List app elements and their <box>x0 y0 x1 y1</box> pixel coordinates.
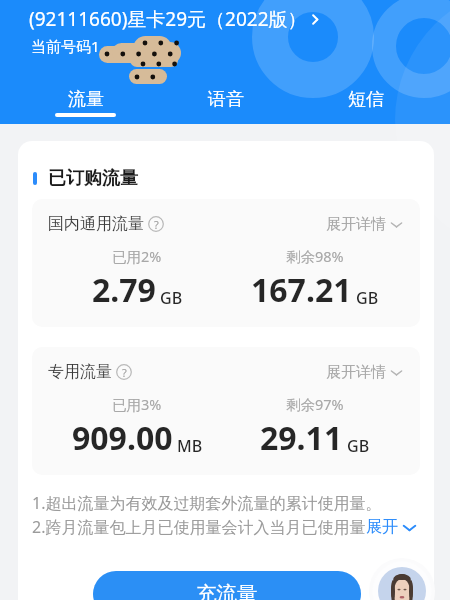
staticText: 国内通用流量 <box>48 214 144 234</box>
staticText: 当前号码1 8 <box>31 36 152 56</box>
button[interactable]: 展开详情 <box>326 363 404 382</box>
staticText: 909.00 <box>72 416 173 460</box>
button[interactable]: 说明 <box>116 364 132 380</box>
staticText: 已订购流量 <box>48 167 138 190</box>
staticText: 1.超出流量为有效及过期套外流量的累计使用量。 <box>32 492 382 514</box>
staticText: 剩余97% <box>286 394 344 414</box>
staticText: ? <box>154 217 159 232</box>
staticText: MB <box>177 435 203 457</box>
staticText: GB <box>347 435 370 457</box>
staticText: 展开详情 <box>326 215 386 234</box>
staticText: 展开 <box>366 517 398 537</box>
staticText: 剩余98% <box>286 246 344 266</box>
staticText: 语音 <box>208 88 244 111</box>
staticText: 流量 <box>68 88 104 111</box>
button[interactable]: (92111660)星卡29元（2022版） <box>29 6 324 32</box>
button[interactable]: 说明 <box>148 216 164 232</box>
staticText: 已用2% <box>112 246 162 266</box>
staticText: 展开详情 <box>326 363 386 382</box>
staticText: 已用3% <box>112 394 162 414</box>
button[interactable]: 展开 <box>366 517 418 537</box>
staticText: 2.79 <box>92 268 156 312</box>
staticText: 2.跨月流量包上月已使用量会计入当月已使用量 <box>32 516 366 538</box>
staticText: ? <box>122 365 127 380</box>
staticText: 29.11 <box>260 416 343 460</box>
staticText: 短信 <box>348 88 384 111</box>
button[interactable]: 展开详情 <box>326 215 404 234</box>
staticText: 167.21 <box>251 268 352 312</box>
staticText: 专用流量 <box>48 362 112 382</box>
staticText: (92111660)星卡29元（2022版） <box>29 6 307 32</box>
staticText: GB <box>160 287 183 309</box>
button[interactable]: 短信 <box>315 88 416 117</box>
staticText: 充流量 <box>196 581 258 600</box>
button[interactable]: 充流量 <box>93 571 361 600</box>
button[interactable]: 流量 <box>35 88 136 117</box>
button[interactable]: 语音 <box>175 88 276 117</box>
staticText: GB <box>356 287 379 309</box>
button[interactable]: 在线客服 <box>370 552 434 600</box>
